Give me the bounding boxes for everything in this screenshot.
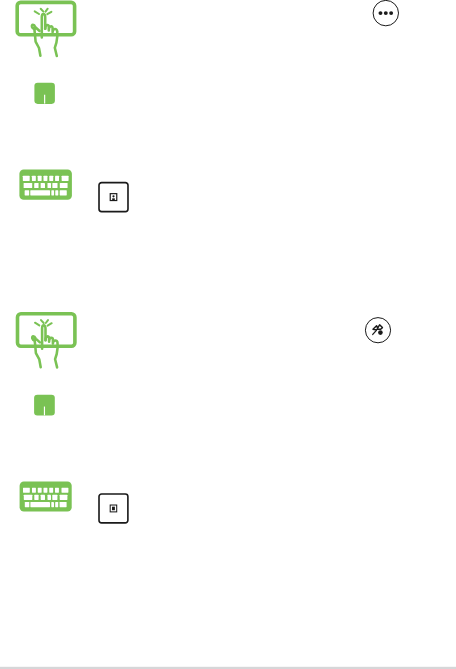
button[interactable]: Tap the touch screen (15, 0, 77, 57)
button[interactable]: More options (372, 0, 400, 28)
button[interactable]: Tap the touchpad (34, 394, 56, 417)
button[interactable]: Keyboard key (97, 492, 130, 525)
button[interactable]: Keyboard key (97, 181, 130, 214)
button[interactable]: Tap the touchpad (34, 82, 56, 105)
button[interactable]: Tap the touch screen (15, 311, 77, 368)
button[interactable]: Keyboard (19, 481, 73, 513)
button[interactable]: Pin (365, 317, 392, 344)
button[interactable]: Keyboard (19, 169, 73, 201)
